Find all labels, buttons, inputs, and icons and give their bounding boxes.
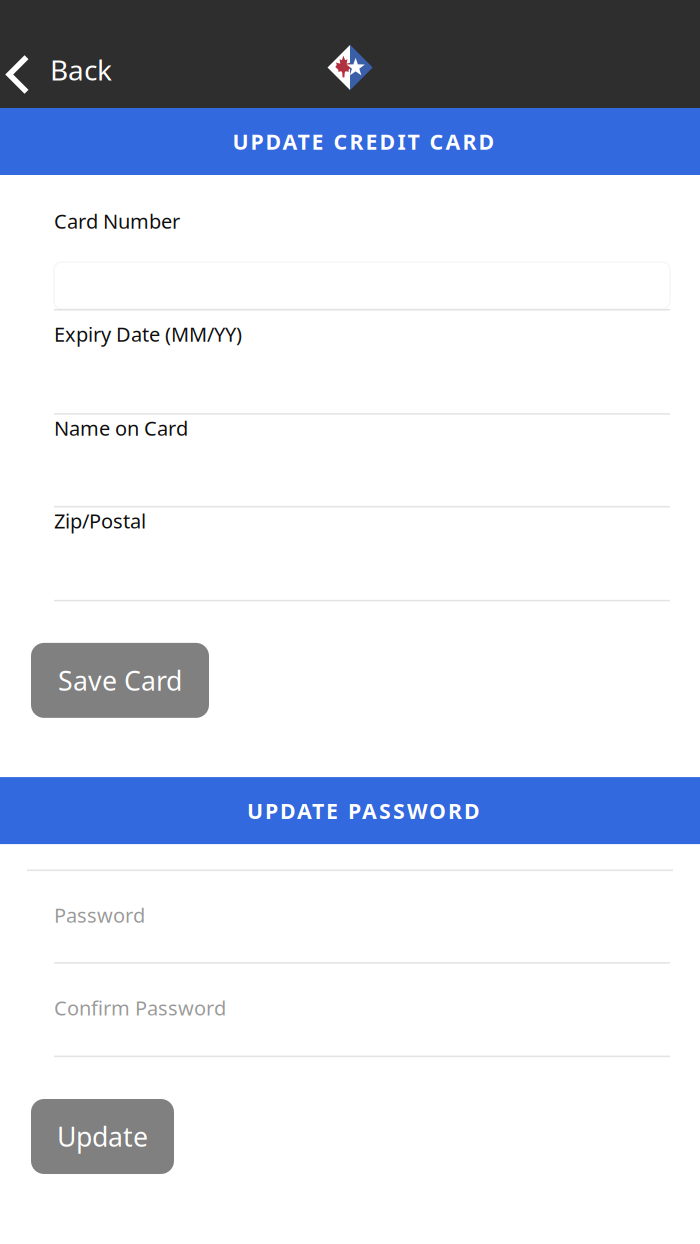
staticText: Zip/Postal (54, 507, 146, 534)
staticText: UPDATE PASSWORD (247, 796, 480, 825)
staticText: Save Card (58, 663, 182, 698)
button[interactable]: Back (0, 0, 126, 108)
staticText: UPDATE CREDIT CARD (232, 127, 494, 156)
staticText: Confirm Password (54, 994, 226, 1021)
staticText: Name on Card (54, 415, 188, 441)
staticText: Card Number (54, 208, 180, 234)
staticText: Password (54, 902, 145, 928)
button[interactable]: Update (31, 1099, 174, 1174)
button[interactable]: Save Card (31, 643, 209, 718)
staticText: Expiry Date (MM/YY) (54, 321, 242, 347)
staticText: Update (57, 1119, 148, 1154)
staticText: Back (50, 51, 112, 88)
